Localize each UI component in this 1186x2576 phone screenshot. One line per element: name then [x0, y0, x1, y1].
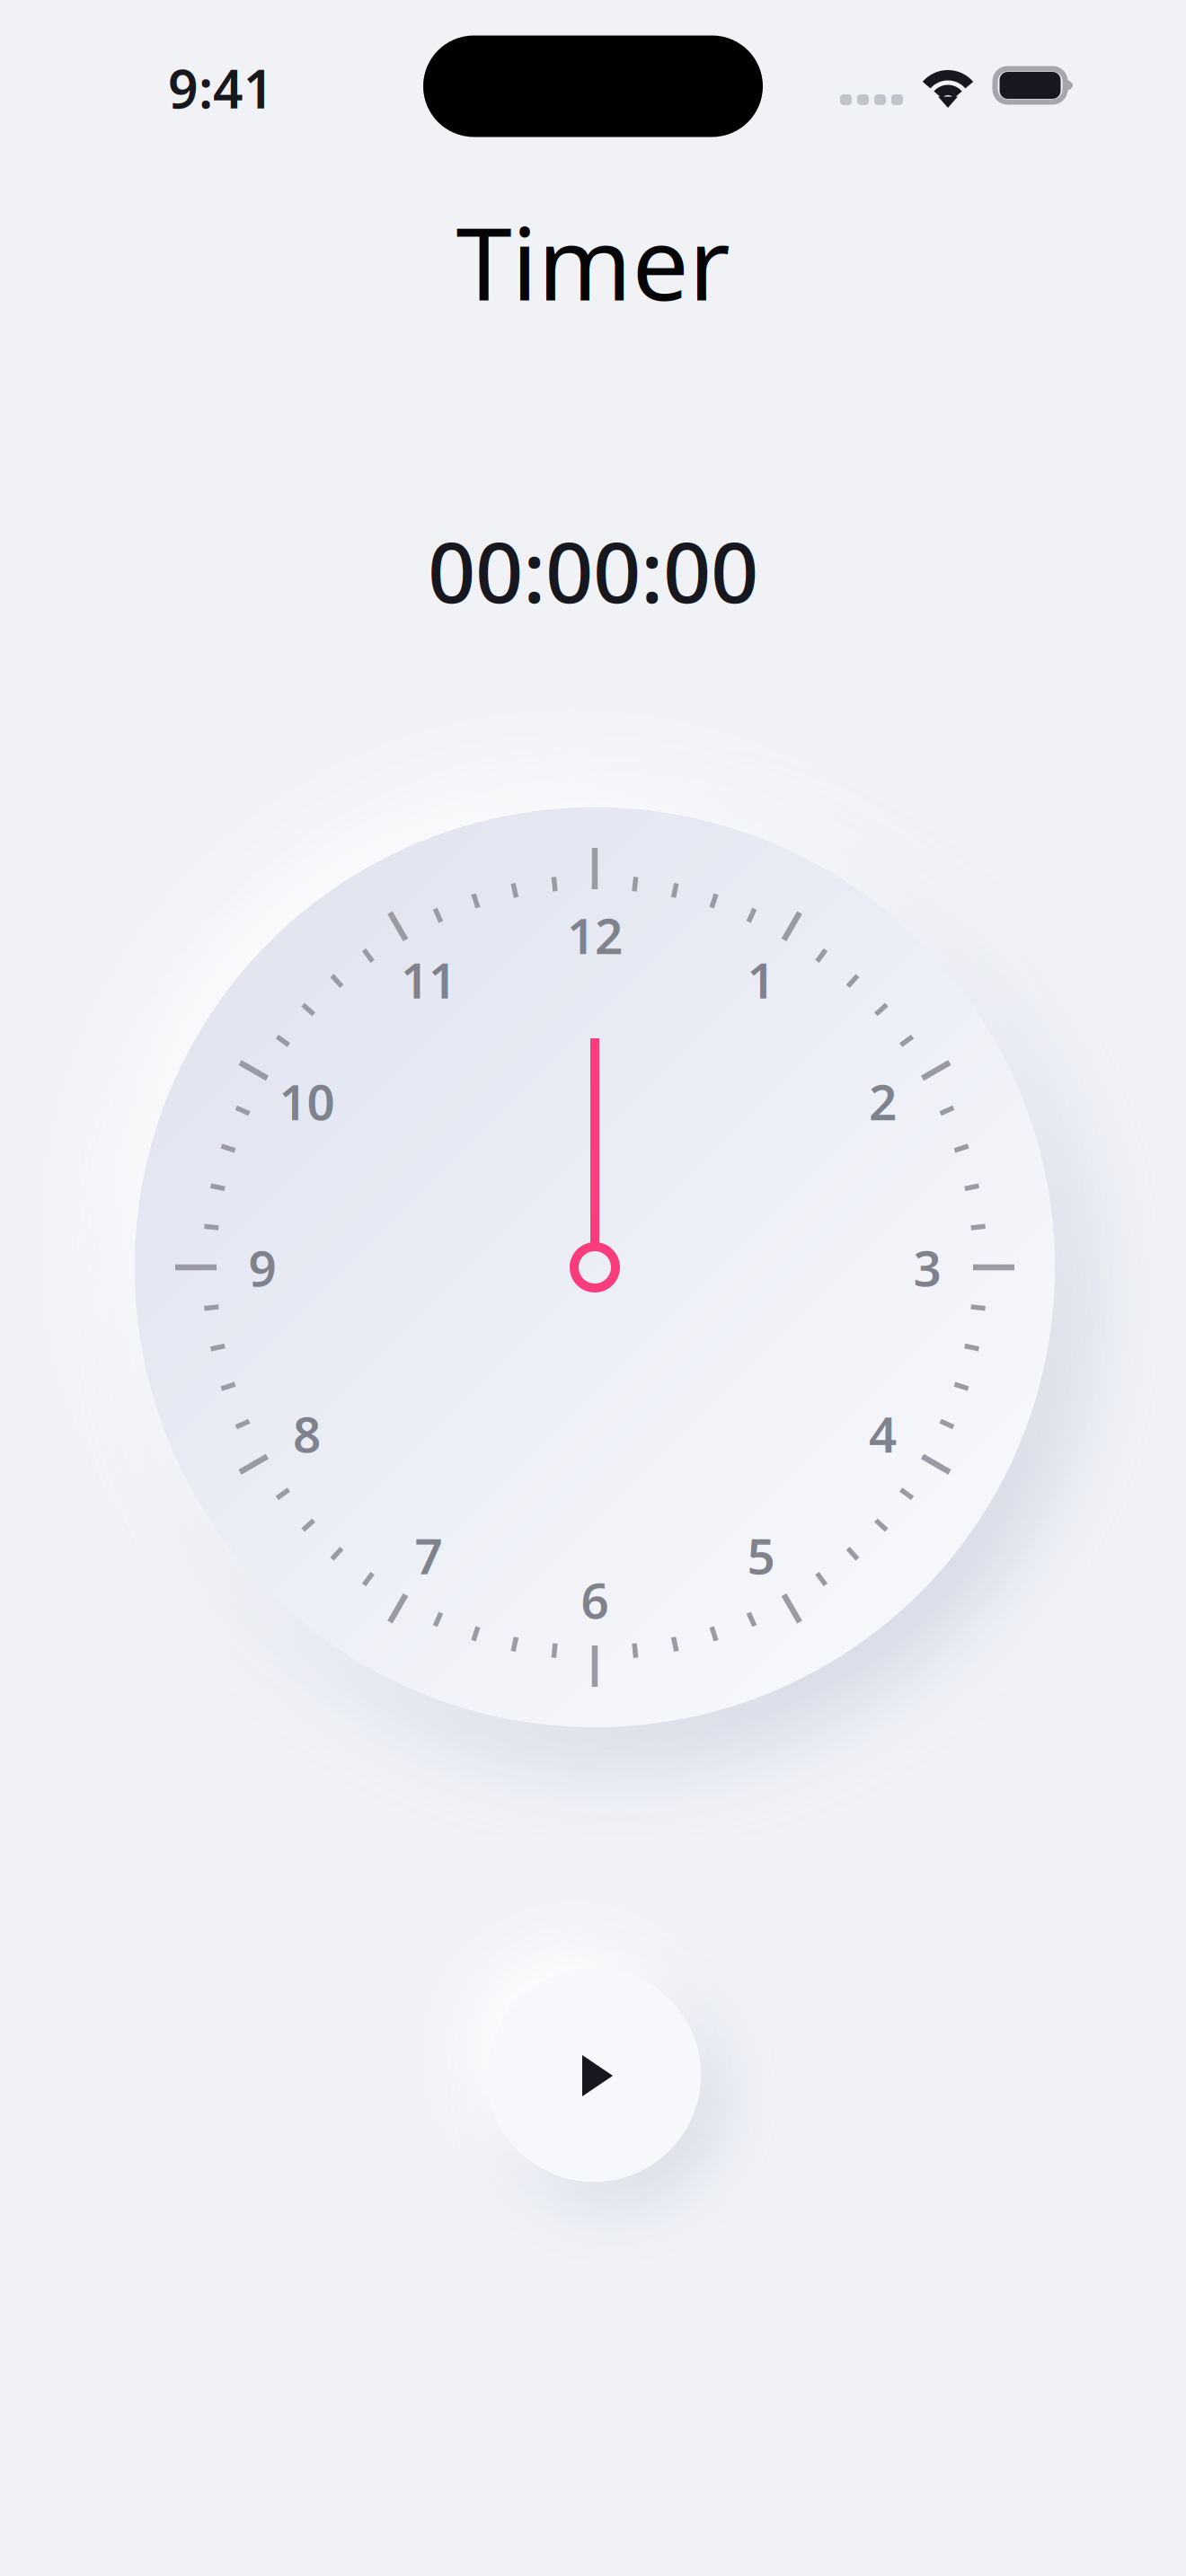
staticText: 8	[293, 1401, 321, 1466]
staticText: 3	[913, 1235, 941, 1300]
staticText: 1	[747, 947, 775, 1012]
staticText: 00:00:00	[428, 515, 758, 626]
staticText: 9	[248, 1235, 276, 1300]
staticText: 2	[869, 1069, 897, 1134]
staticText: 7	[415, 1523, 443, 1588]
staticText: 5	[747, 1523, 775, 1588]
staticText: 12	[567, 902, 623, 968]
staticText: 4	[869, 1401, 897, 1466]
button[interactable]: Start timer	[487, 1968, 701, 2182]
staticText: 6	[581, 1567, 609, 1632]
staticText: 9:41	[168, 53, 274, 123]
staticText: 11	[401, 947, 456, 1012]
staticText: 10	[279, 1069, 335, 1134]
staticText: Timer	[456, 195, 730, 328]
